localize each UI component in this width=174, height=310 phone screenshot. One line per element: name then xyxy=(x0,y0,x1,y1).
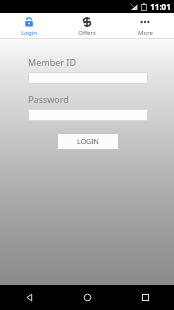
staticText: Member ID xyxy=(28,56,76,68)
button[interactable] xyxy=(28,72,148,84)
button[interactable]: Offers xyxy=(58,13,116,38)
staticText: Login xyxy=(21,29,37,37)
staticText: Offers xyxy=(78,29,96,37)
button[interactable]: More xyxy=(116,13,174,38)
button[interactable] xyxy=(28,109,148,121)
button[interactable]: LOGIN xyxy=(57,133,119,150)
staticText: 11:01 xyxy=(150,1,171,12)
staticText: LOGIN xyxy=(77,137,99,147)
staticText: More xyxy=(138,29,153,37)
button[interactable]: Recent apps xyxy=(116,285,174,310)
button[interactable]: Login xyxy=(0,13,58,38)
button[interactable]: Back xyxy=(0,285,58,310)
button[interactable]: Home xyxy=(58,285,116,310)
staticText: Password xyxy=(28,93,69,105)
